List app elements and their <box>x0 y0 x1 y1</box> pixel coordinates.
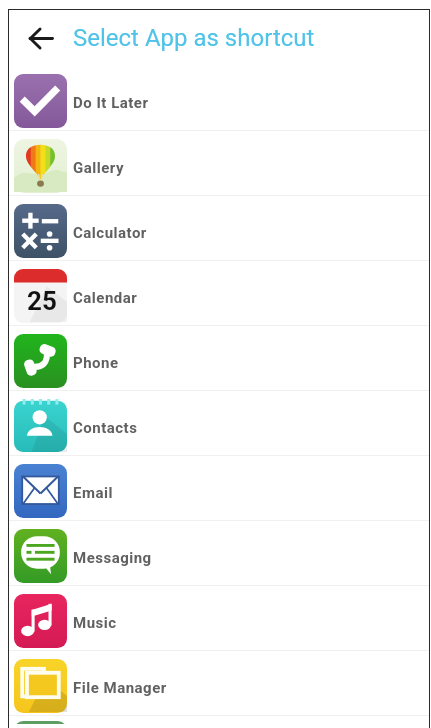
staticText: Calculator <box>73 224 147 242</box>
button[interactable]: Clock <box>9 716 429 728</box>
staticText: Music <box>73 614 117 632</box>
button[interactable]: Contacts <box>9 391 429 455</box>
staticText: Calendar <box>73 289 138 307</box>
button[interactable]: File Manager <box>9 651 429 715</box>
button[interactable]: Phone <box>9 326 429 390</box>
staticText: Messaging <box>73 549 152 567</box>
button[interactable]: Email <box>9 456 429 520</box>
button[interactable]: Do It Later <box>9 66 429 130</box>
button[interactable]: Messaging <box>9 521 429 585</box>
staticText: Select App as shortcut <box>73 24 315 52</box>
button[interactable]: Calculator <box>9 196 429 260</box>
staticText: 25 <box>27 286 57 316</box>
staticText: Gallery <box>73 159 124 177</box>
button[interactable]: Music <box>9 586 429 650</box>
button[interactable]: Gallery <box>9 131 429 195</box>
staticText: Contacts <box>73 419 138 437</box>
staticText: File Manager <box>73 679 167 697</box>
staticText: Do It Later <box>73 94 149 112</box>
staticText: Phone <box>73 354 119 372</box>
button[interactable]: Back <box>9 10 72 66</box>
staticText: Email <box>73 484 113 502</box>
button[interactable]: 25 <box>9 261 429 325</box>
